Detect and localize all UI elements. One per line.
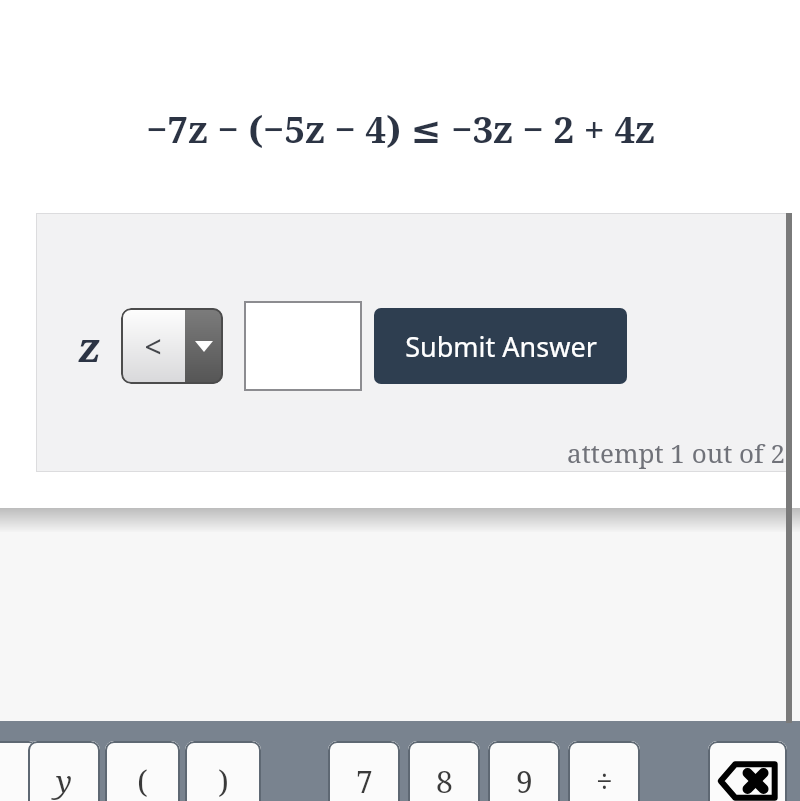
button[interactable]: (	[105, 741, 180, 801]
staticText: y	[56, 761, 72, 801]
staticText: 8	[436, 761, 453, 801]
staticText: )	[218, 761, 229, 801]
button[interactable]: key	[0, 741, 38, 801]
button[interactable]: Backspace	[708, 741, 787, 801]
button[interactable]: 8	[408, 741, 480, 801]
button[interactable]: Submit Answer	[374, 308, 627, 384]
staticText: attempt 1 out of 2	[567, 435, 785, 470]
button[interactable]: 7	[328, 741, 400, 801]
button[interactable]: ÷	[568, 741, 640, 801]
button[interactable]: )	[185, 741, 261, 801]
button[interactable]: Comparison operator	[121, 308, 223, 384]
button[interactable]: Answer input field	[244, 301, 362, 391]
staticText: z	[78, 319, 101, 373]
staticText: −7z − (−5z − 4) ≤ −3z − 2 + 4z	[146, 103, 655, 153]
button[interactable]: y	[28, 741, 100, 801]
button[interactable]: 9	[488, 741, 560, 801]
staticText: 9	[516, 761, 533, 801]
staticText: ÷	[596, 761, 613, 801]
staticText: 7	[356, 761, 373, 801]
staticText: Submit Answer	[405, 328, 597, 365]
staticText: <	[144, 326, 162, 367]
staticText: (	[137, 761, 148, 801]
